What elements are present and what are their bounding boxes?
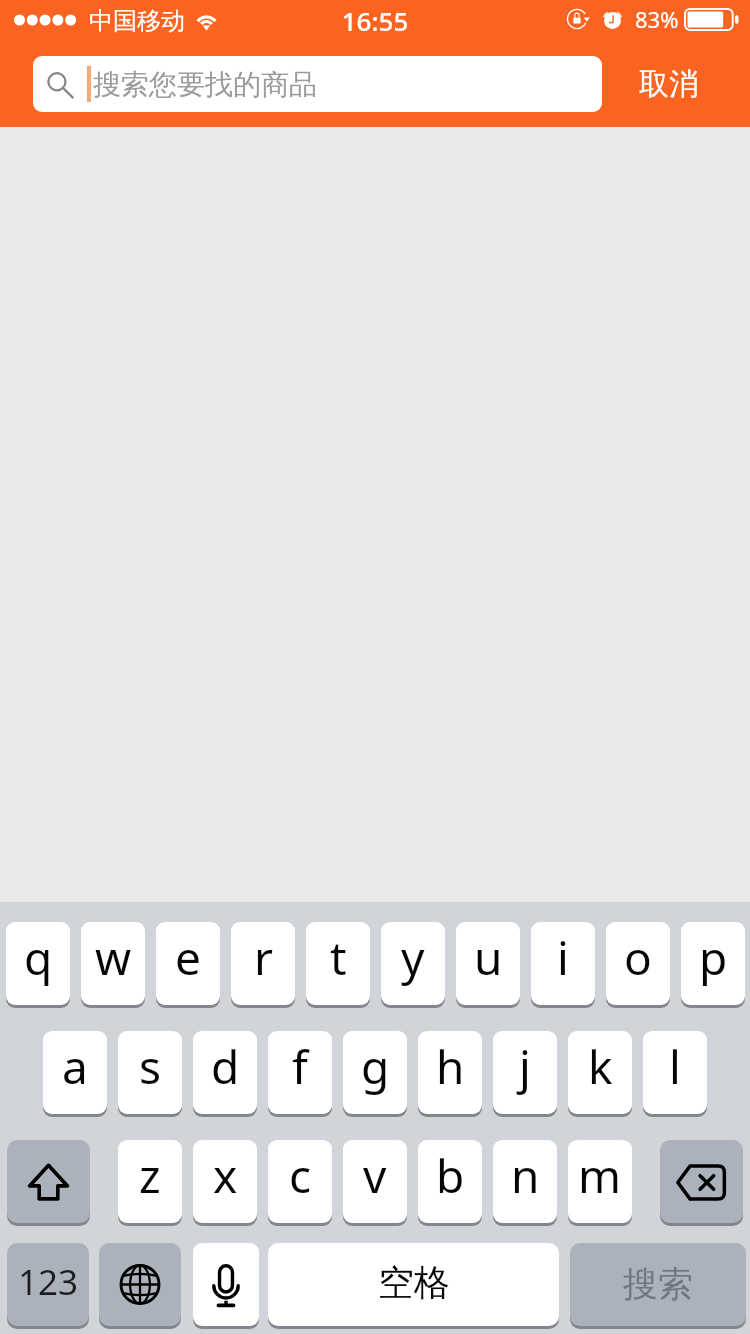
button[interactable]: t (306, 922, 370, 1008)
button[interactable]: m (568, 1140, 632, 1226)
staticText: l (669, 1035, 681, 1098)
staticText: w (95, 926, 132, 989)
button[interactable]: i (531, 922, 595, 1008)
staticText: h (436, 1035, 465, 1098)
button[interactable]: a (43, 1031, 107, 1117)
button[interactable]: n (493, 1140, 557, 1226)
button[interactable]: Shift (7, 1140, 90, 1226)
staticText: r (254, 926, 273, 989)
staticText: z (139, 1144, 161, 1207)
staticText: i (557, 926, 569, 989)
button[interactable]: 空格 (268, 1243, 559, 1329)
button[interactable]: Voice input (193, 1243, 259, 1329)
staticText: 16:55 (0, 3, 750, 38)
staticText: v (363, 1144, 387, 1207)
staticText: y (401, 926, 425, 989)
button[interactable]: b (418, 1140, 482, 1226)
staticText: j (519, 1035, 531, 1098)
staticText: f (292, 1035, 308, 1098)
button[interactable]: w (81, 922, 145, 1008)
button[interactable]: g (343, 1031, 407, 1117)
button[interactable]: x (193, 1140, 257, 1226)
staticText: 取消 (639, 65, 699, 103)
staticText: n (511, 1144, 540, 1207)
button[interactable]: 取消 (608, 56, 730, 112)
staticText: 83% (635, 4, 679, 34)
button[interactable]: f (268, 1031, 332, 1117)
button[interactable]: r (231, 922, 295, 1008)
button[interactable]: y (381, 922, 445, 1008)
button[interactable]: 搜索您要找的商品 (33, 56, 602, 112)
button[interactable]: d (193, 1031, 257, 1117)
button[interactable]: q (6, 922, 70, 1008)
button[interactable]: k (568, 1031, 632, 1117)
button[interactable]: j (493, 1031, 557, 1117)
button[interactable]: o (606, 922, 670, 1008)
staticText: c (289, 1144, 312, 1207)
staticText: 搜索 (623, 1262, 693, 1306)
staticText: k (588, 1035, 613, 1098)
button[interactable]: s (118, 1031, 182, 1117)
button[interactable]: z (118, 1140, 182, 1226)
staticText: e (175, 926, 201, 989)
button[interactable]: Switch keyboard (99, 1243, 181, 1329)
staticText: s (139, 1035, 162, 1098)
staticText: 123 (18, 1258, 79, 1306)
staticText: t (330, 926, 347, 989)
staticText: g (361, 1035, 390, 1098)
staticText: a (62, 1035, 88, 1098)
staticText: m (578, 1144, 622, 1207)
button[interactable]: c (268, 1140, 332, 1226)
button[interactable]: l (643, 1031, 707, 1117)
staticText: 中国移动 (89, 6, 185, 36)
staticText: d (211, 1035, 240, 1098)
staticText: b (436, 1144, 465, 1207)
staticText: u (474, 926, 503, 989)
staticText: 空格 (378, 1260, 450, 1305)
staticText: q (24, 926, 53, 989)
button[interactable]: Backspace (660, 1140, 743, 1226)
button[interactable]: v (343, 1140, 407, 1226)
staticText: x (213, 1144, 238, 1207)
staticText: o (624, 926, 652, 989)
staticText: p (699, 926, 728, 989)
button[interactable]: u (456, 922, 520, 1008)
button[interactable]: p (681, 922, 745, 1008)
staticText: 搜索您要找的商品 (93, 67, 317, 102)
button[interactable]: 123 (7, 1243, 89, 1329)
button[interactable]: h (418, 1031, 482, 1117)
button[interactable]: e (156, 922, 220, 1008)
button[interactable]: 搜索 (570, 1243, 746, 1329)
